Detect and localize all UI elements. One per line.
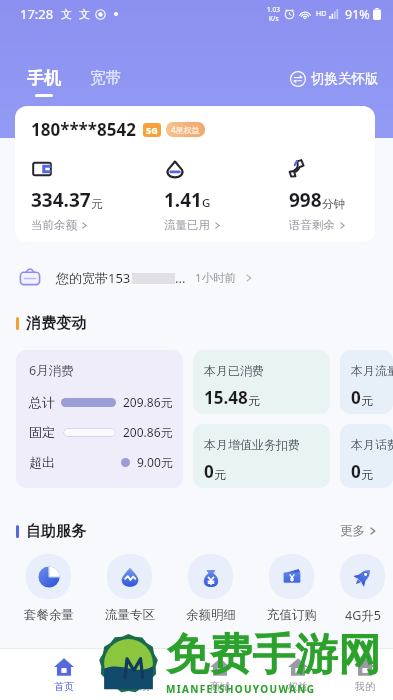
staticText: 本月增值业务扣费 [204,437,300,452]
button[interactable]: 权益 [259,656,337,693]
button[interactable]: 180****8542 [15,106,375,242]
staticText: 4星权益 [171,124,200,135]
staticText: 我的 [355,680,375,693]
staticText: MIANFEISHOUYOUWANG [166,682,316,696]
button[interactable]: 我的 [337,656,393,693]
staticText: 手机 [27,68,61,89]
staticText: 更多 [340,523,365,539]
staticText: 5G [146,124,158,136]
button[interactable]: 998 [289,158,375,232]
staticText: 元 [91,197,103,211]
button[interactable]: 流量专区 [89,553,170,623]
staticText: 17:28 [20,5,54,23]
staticText: 9.00元 [137,454,173,470]
staticText: 元 [361,467,373,482]
staticText: 套餐余量 [24,607,74,623]
staticText: 当前余额 [31,218,77,232]
staticText: 1小时前 [195,270,237,286]
button[interactable]: 套餐余量 [8,553,89,623]
staticText: 元 [248,393,260,408]
staticText: 91% [345,6,370,23]
staticText: 服务 [132,680,152,693]
staticText: 余额明细 [186,607,236,623]
button[interactable]: 本月增值业务扣费 [193,424,330,488]
staticText: 切换关怀版 [311,70,379,87]
button[interactable]: 334.37 [31,158,164,232]
staticText: 0 [204,460,214,483]
staticText: 209.86元 [123,394,173,410]
staticText: 文 [61,7,72,21]
staticText: 固定 [29,424,55,440]
staticText: 4G升5 [345,607,381,624]
staticText: 免费手游网 [166,628,381,682]
staticText: 流量专区 [105,607,155,623]
button[interactable]: 您的宽带153 [18,258,375,298]
button[interactable]: 首页 [25,656,103,693]
button[interactable]: 服务 [103,656,181,693]
button[interactable]: 充值订购 [251,553,332,623]
staticText: 流量已用 [164,218,210,232]
staticText: 0 [351,386,361,409]
staticText: 334.37 [31,187,91,213]
staticText: 充值订购 [267,607,317,623]
staticText: 本月流量费 [351,363,393,378]
staticText: 200.86元 [123,424,173,440]
button[interactable]: 商城 [181,656,259,693]
button[interactable]: 1.41 [164,158,289,232]
button[interactable]: 本月流量费 [340,350,393,414]
staticText: 15.48 [204,386,248,409]
staticText: 文 [79,7,90,21]
staticText: 1.41 [164,187,202,213]
button[interactable]: 更多 [340,523,377,539]
button[interactable]: 本月已消费 [193,350,330,414]
staticText: 总计 [29,394,55,410]
staticText: 分钟 [322,197,345,211]
button[interactable]: 4G升5 [332,553,393,624]
staticText: ... [175,269,186,287]
staticText: 1.03 [267,5,280,14]
staticText: 权益 [288,680,308,693]
staticText: 元 [361,393,373,408]
staticText: HD [316,9,327,19]
staticText: G [202,195,211,211]
button[interactable]: 手机 [27,66,61,99]
staticText: 本月话费 [351,437,393,452]
button[interactable]: 6月消费 [16,350,183,488]
staticText: 180****8542 [31,118,136,141]
staticText: 本月已消费 [204,363,264,378]
staticText: 6月消费 [29,362,74,379]
staticText: 自助服务 [26,522,86,541]
button[interactable]: 切换关怀版 [290,70,379,94]
staticText: 宽带 [90,68,121,88]
staticText: 商城 [210,680,230,693]
staticText: K/s [269,14,279,23]
staticText: 首页 [54,680,74,693]
staticText: 消费变动 [26,314,86,333]
button[interactable]: 余额明细 [170,553,251,623]
staticText: 0 [351,460,361,483]
button[interactable]: 宽带 [90,68,121,96]
button[interactable]: 本月话费 [340,424,393,488]
staticText: 元 [214,467,226,482]
staticText: 998 [289,187,322,213]
staticText: 语音剩余 [289,218,335,232]
staticText: 您的宽带153 [56,269,131,287]
staticText: 超出 [29,454,55,470]
